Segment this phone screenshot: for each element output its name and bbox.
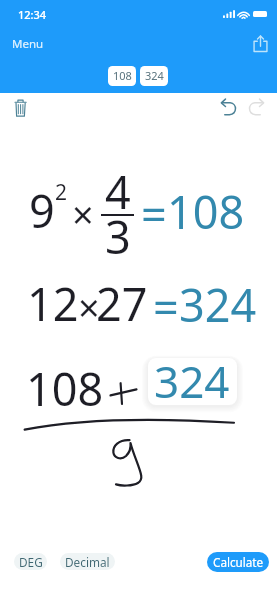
staticText: =	[141, 183, 167, 244]
staticText: 108	[113, 68, 132, 83]
button[interactable]: Delete	[11, 96, 31, 118]
button[interactable]: 324	[140, 66, 168, 86]
staticText: 108	[26, 358, 104, 419]
staticText: 324	[145, 68, 164, 83]
staticText: Decimal	[65, 554, 110, 570]
button[interactable]: Calculate	[207, 552, 269, 572]
staticText: 9	[29, 180, 55, 241]
staticText: 12:34	[18, 7, 47, 22]
button[interactable]	[148, 358, 237, 405]
button[interactable]: Menu	[7, 32, 49, 56]
button[interactable]: Decimal	[60, 553, 115, 570]
staticText: Menu	[12, 36, 44, 52]
staticText: 108	[167, 181, 245, 242]
button[interactable]: Undo	[219, 98, 237, 116]
staticText: 27	[96, 273, 148, 334]
staticText: =	[153, 276, 179, 337]
staticText: ×	[78, 281, 100, 333]
staticText: Calculate	[213, 554, 264, 570]
staticText: 324	[179, 274, 257, 335]
button[interactable]: DEG	[14, 553, 47, 570]
staticText: 12	[27, 273, 79, 334]
staticText: DEG	[19, 554, 43, 570]
staticText: 2	[55, 178, 68, 207]
staticText: 3	[105, 206, 131, 267]
staticText: ×	[72, 188, 94, 240]
button[interactable]: Share	[249, 32, 272, 55]
staticText: 324	[154, 351, 230, 411]
staticText: 4	[105, 161, 131, 222]
button[interactable]: 108	[108, 66, 136, 86]
button[interactable]: Redo	[248, 98, 266, 116]
